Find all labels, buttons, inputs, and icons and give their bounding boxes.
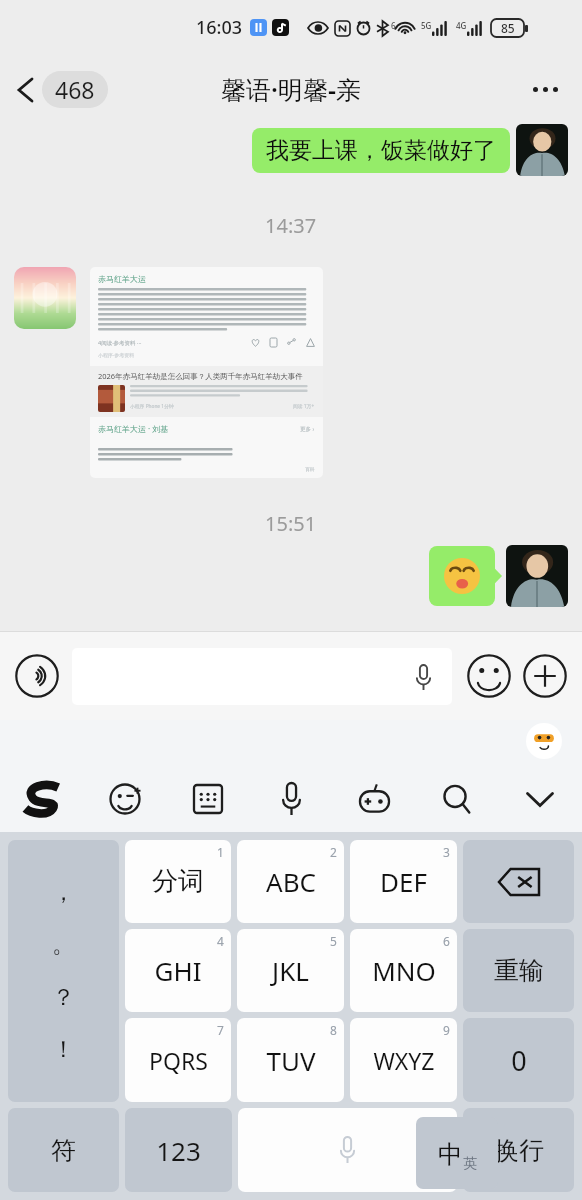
button[interactable]: Emoji — [466, 653, 512, 699]
staticText: 。 — [52, 930, 75, 959]
button[interactable]: MNO 6 — [350, 929, 457, 1012]
staticText: ？ — [52, 983, 75, 1012]
staticText: 百科 — [305, 466, 315, 472]
button[interactable]: 退格 — [463, 840, 574, 923]
staticText: 2026年赤马红羊劫是怎么回事？人类两千年赤马红羊劫大事件 — [98, 371, 303, 381]
staticText: PQRS — [149, 1045, 208, 1076]
staticText: 4 — [217, 933, 224, 949]
staticText: TUV — [266, 1043, 316, 1078]
staticText: ！ — [52, 1035, 75, 1064]
button[interactable]: Hide keyboard — [516, 775, 564, 823]
button[interactable]: 123 — [125, 1108, 232, 1192]
button[interactable]: PQRS 7 — [125, 1018, 231, 1102]
staticText: 5 — [330, 933, 337, 949]
staticText: 0 — [511, 1042, 527, 1079]
button[interactable]: Stickers — [101, 775, 149, 823]
button[interactable]: Sogou input method — [18, 775, 66, 823]
button[interactable]: 换行 — [463, 1108, 574, 1192]
button[interactable]: 重输 — [463, 929, 574, 1012]
staticText: 小程序 Phone 1分钟 — [130, 403, 174, 410]
staticText: 3 — [443, 844, 450, 860]
button[interactable]: Voice input — [267, 775, 315, 823]
staticText: 我要上课，饭菜做好了 — [266, 136, 496, 165]
button[interactable]: More functions — [522, 653, 568, 699]
staticText: WXYZ — [373, 1045, 435, 1076]
staticText: 85 — [501, 20, 515, 36]
button[interactable]: Back, 468 unread — [12, 65, 114, 114]
staticText: 馨语·明馨-亲 — [221, 72, 361, 106]
button[interactable]: Voice input — [14, 653, 60, 699]
staticText: 小程序·参考资料 — [98, 352, 135, 359]
staticText: 换行 — [494, 1135, 544, 1166]
button[interactable]: Keyboard layout — [184, 775, 232, 823]
staticText: 赤马红羊大运 · 刘基 — [98, 423, 169, 434]
staticText: ABC — [266, 864, 316, 899]
staticText: 7 — [217, 1022, 224, 1038]
button[interactable]: TUV 8 — [237, 1018, 344, 1102]
button[interactable]: 赤马红羊大运 — [90, 267, 323, 478]
button[interactable]: DEF 3 — [350, 840, 457, 923]
button[interactable]: Games — [350, 775, 398, 823]
staticText: 16:03 — [196, 15, 243, 40]
staticText: 4G — [456, 20, 467, 31]
button[interactable]: 我要上课，饭菜做好了 — [252, 128, 510, 173]
staticText: GHI — [154, 953, 202, 988]
button[interactable]: 符 — [8, 1108, 119, 1192]
staticText: 4阅读·参考资料 ··· — [98, 339, 142, 347]
staticText: JKL — [272, 953, 309, 988]
staticText: 6 — [443, 933, 450, 949]
button[interactable]: Sticker suggestion — [526, 723, 562, 759]
staticText: 5G — [421, 20, 432, 31]
button[interactable]: Microphone — [406, 660, 440, 694]
button[interactable]: GHI 4 — [125, 929, 231, 1012]
button[interactable]: Sticker message — [429, 546, 495, 606]
button[interactable]: 0 — [463, 1018, 574, 1102]
staticText: 468 — [55, 74, 95, 105]
staticText: 英 — [463, 1155, 477, 1173]
staticText: 赤马红羊大运 — [98, 274, 146, 284]
staticText: 符 — [51, 1135, 76, 1166]
button[interactable]: 分词 1 — [125, 840, 231, 923]
staticText: ， — [52, 878, 75, 907]
staticText: MNO — [372, 953, 436, 988]
staticText: 14:37 — [265, 212, 317, 239]
button[interactable]: Search — [433, 775, 481, 823]
button[interactable]: WXYZ 9 — [350, 1018, 457, 1102]
staticText: 8 — [330, 1022, 337, 1038]
staticText: 2 — [330, 844, 337, 860]
staticText: 6 — [391, 20, 396, 31]
staticText: 重输 — [494, 955, 544, 986]
staticText: 阅读 1万+ — [293, 403, 315, 410]
staticText: 中 — [438, 1139, 463, 1170]
staticText: DEF — [380, 864, 427, 899]
staticText: 1 — [217, 844, 224, 860]
staticText: 分词 — [152, 865, 204, 898]
button[interactable]: Message input — [72, 648, 452, 705]
button[interactable]: 空格 — [238, 1108, 457, 1192]
staticText: 15:51 — [265, 510, 317, 537]
staticText: 更多 › — [300, 425, 315, 433]
button[interactable]: JKL 5 — [237, 929, 344, 1012]
button[interactable]: 中英切换 — [416, 1117, 498, 1189]
button[interactable]: ABC 2 — [237, 840, 344, 923]
button[interactable]: 标点符号 — [8, 840, 119, 1102]
button[interactable]: More options — [523, 77, 568, 102]
staticText: 123 — [156, 1133, 201, 1168]
staticText: 9 — [443, 1022, 450, 1038]
